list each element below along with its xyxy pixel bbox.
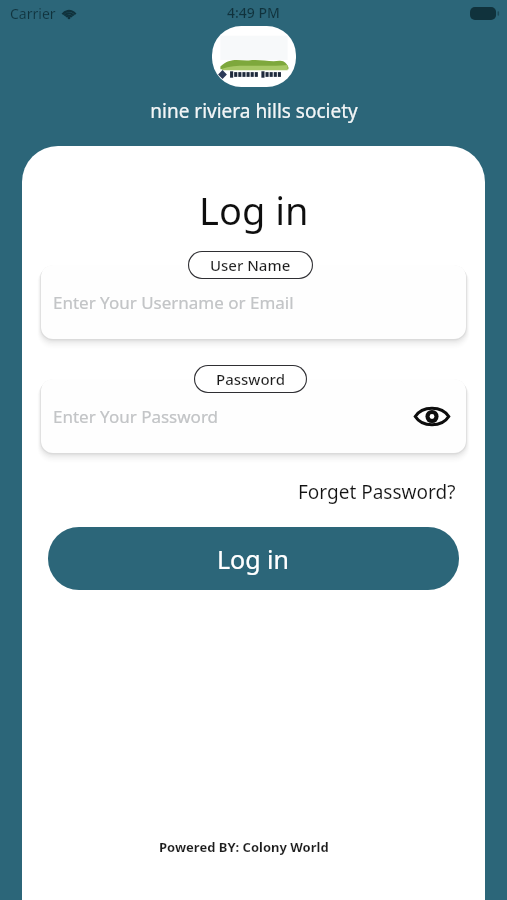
button[interactable]: Show password (412, 396, 452, 436)
staticText: Log in (217, 542, 290, 576)
button[interactable]: Enter Your Username or Email (41, 265, 466, 339)
staticText: User Name (210, 255, 291, 275)
button[interactable]: Log in (48, 527, 459, 590)
staticText: Log in (199, 184, 309, 236)
button[interactable]: Forget Password? (294, 475, 460, 509)
staticText: Password (216, 369, 285, 389)
staticText: nine riviera hills society (150, 98, 358, 124)
staticText: 4:49 PM (227, 3, 280, 22)
staticText: Enter Your Username or Email (53, 291, 294, 314)
staticText: Powered BY: Colony World (159, 838, 329, 856)
button[interactable]: Enter Your Password (41, 379, 466, 453)
staticText: Forget Password? (298, 479, 456, 505)
staticText: Carrier (10, 4, 56, 23)
staticText: Enter Your Password (53, 405, 219, 428)
